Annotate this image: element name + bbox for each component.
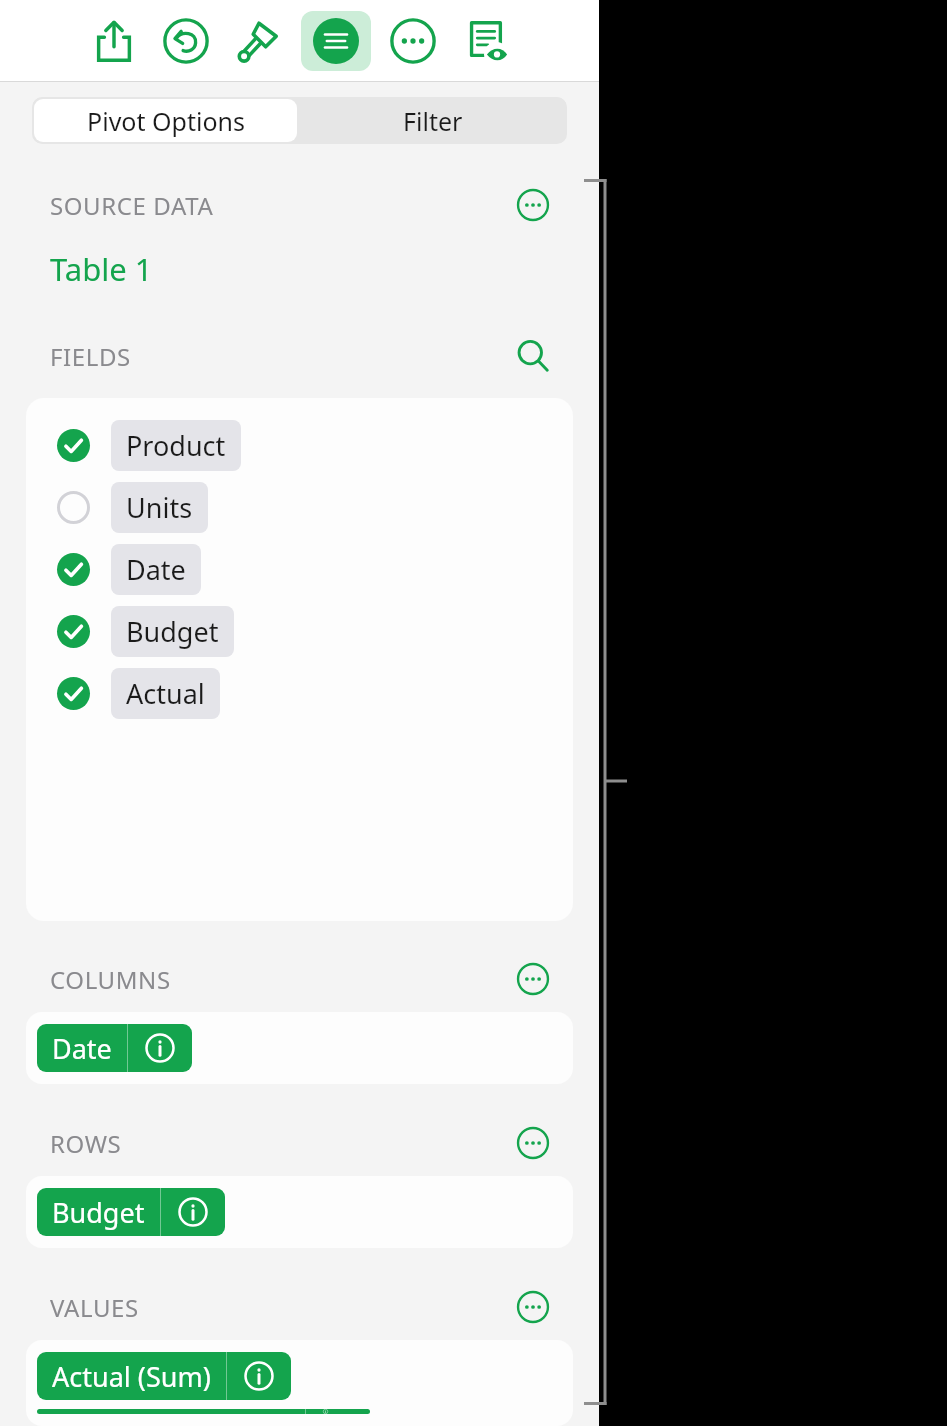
staticText: Date [52, 1030, 112, 1067]
staticText: COLUMNS [50, 963, 171, 996]
button[interactable]: COLUMNS options [511, 957, 555, 1001]
button[interactable]: ROWS options [511, 1121, 555, 1165]
staticText: Filter [403, 104, 463, 138]
button[interactable]: Actual (Sum) [37, 1352, 291, 1400]
button[interactable]: Filter [299, 97, 567, 144]
button[interactable]: Budget [26, 600, 573, 662]
button[interactable]: SOURCE DATA options [511, 183, 555, 227]
staticText: SOURCE DATA [50, 189, 214, 222]
staticText: Date [126, 551, 186, 588]
staticText: Table 1 [50, 248, 153, 290]
button[interactable]: Format brush [228, 11, 288, 71]
button[interactable]: Undo [156, 11, 216, 71]
button[interactable]: More [383, 11, 443, 71]
staticText: Budget [52, 1194, 145, 1231]
staticText: Actual [126, 675, 205, 712]
staticText: Budget [126, 613, 219, 650]
button[interactable]: Share [84, 11, 144, 71]
button[interactable]: Product (Count All) [37, 1409, 370, 1414]
staticText: Actual (Sum) [52, 1358, 211, 1395]
button[interactable]: VALUES options [511, 1285, 555, 1329]
button[interactable]: Product [26, 414, 573, 476]
button[interactable]: Date [37, 1024, 192, 1072]
staticText: FIELDS [50, 340, 131, 373]
button[interactable]: Budget [37, 1188, 225, 1236]
button[interactable]: Document setup [455, 11, 515, 71]
staticText: ROWS [50, 1127, 122, 1160]
button[interactable]: Units [26, 476, 573, 538]
button[interactable]: Search fields [511, 334, 555, 378]
button[interactable]: Actual [26, 662, 573, 724]
staticText: VALUES [50, 1291, 139, 1324]
button[interactable]: Pivot Options [34, 99, 297, 142]
button[interactable]: Date [26, 538, 573, 600]
staticText: Pivot Options [87, 104, 245, 138]
button[interactable]: Format [301, 11, 371, 71]
staticText: Product [126, 427, 226, 464]
staticText: Units [126, 489, 193, 526]
